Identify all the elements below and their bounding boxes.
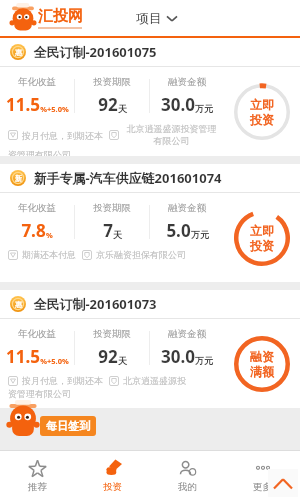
staticText: 融资金额	[168, 328, 206, 340]
staticText: 按月付息，到期还本	[22, 130, 103, 141]
staticText: 7.8	[21, 219, 46, 242]
button[interactable]: 融资	[233, 335, 291, 393]
staticText: 投资期限	[93, 76, 131, 88]
staticText: 推荐	[28, 481, 47, 493]
staticText: 立即	[250, 223, 274, 238]
staticText: 每日签到	[46, 419, 90, 433]
button[interactable]: 展开	[268, 469, 298, 497]
staticText: 项目	[136, 10, 162, 26]
staticText: 万元	[191, 229, 209, 240]
button[interactable]: 更多	[225, 455, 300, 497]
staticText: 京乐融资担保有限公司	[96, 249, 186, 260]
staticText: 投资	[250, 238, 274, 253]
staticText: 万元	[195, 355, 213, 366]
button[interactable]: 立即	[233, 209, 291, 267]
staticText: 立即	[250, 97, 274, 112]
button[interactable]: 汇投网	[10, 3, 83, 33]
staticText: 期满还本付息	[22, 249, 76, 260]
staticText: %+5.0%	[40, 104, 69, 114]
staticText: 汇投网	[38, 7, 83, 26]
staticText: 按月付息，到期还本	[22, 375, 103, 386]
staticText: 30.0	[161, 93, 195, 116]
staticText: 融资	[250, 349, 274, 364]
staticText: 天	[118, 355, 127, 366]
staticText: 北京逍遥盛源投资管理有限公司	[123, 123, 220, 147]
staticText: 北京逍遥盛源投	[123, 375, 186, 386]
button[interactable]: 我的	[150, 455, 225, 497]
staticText: 年化收益	[18, 328, 56, 340]
staticText: 年化收益	[18, 202, 56, 214]
button[interactable]: 推荐	[0, 455, 75, 497]
button[interactable]: 每日签到	[6, 400, 96, 440]
button[interactable]: 惠	[0, 290, 300, 408]
staticText: 92	[98, 93, 118, 116]
staticText: 资管理有限公司	[8, 149, 71, 156]
staticText: 更多	[253, 481, 272, 493]
staticText: 融资金额	[168, 202, 206, 214]
staticText: 满额	[250, 364, 274, 379]
staticText: 30.0	[161, 345, 195, 368]
staticText: 11.5	[6, 93, 40, 116]
staticText: 投资	[250, 112, 274, 127]
staticText: 我的	[178, 481, 197, 493]
staticText: 万元	[195, 103, 213, 114]
staticText: 92	[98, 345, 118, 368]
staticText: 全民订制-201601073	[33, 295, 157, 313]
staticText: 新手专属-汽车供应链201601074	[33, 169, 222, 187]
staticText: 惠	[15, 48, 22, 57]
staticText: 投资期限	[93, 328, 131, 340]
button[interactable]: 惠	[0, 38, 300, 156]
button[interactable]: 立即	[233, 83, 291, 141]
staticText: 11.5	[6, 345, 40, 368]
staticText: 投资期限	[93, 202, 131, 214]
button[interactable]: 项目	[128, 6, 185, 30]
staticText: 年化收益	[18, 76, 56, 88]
staticText: 5.0	[166, 219, 191, 242]
button[interactable]: 投资	[75, 454, 150, 497]
staticText: 投资	[103, 481, 122, 493]
staticText: 资管理有限公司	[8, 388, 71, 399]
staticText: 融资金额	[168, 76, 206, 88]
staticText: 新	[15, 174, 22, 183]
staticText: 天	[118, 103, 127, 114]
button[interactable]: 新	[0, 164, 300, 282]
staticText: 惠	[15, 300, 22, 309]
staticText: %	[46, 230, 53, 240]
staticText: 天	[113, 229, 122, 240]
staticText: 7	[103, 219, 113, 242]
staticText: 全民订制-201601075	[33, 43, 157, 61]
staticText: %+5.0%	[40, 356, 69, 366]
